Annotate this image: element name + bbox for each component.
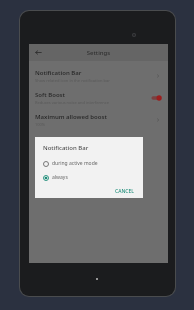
- button[interactable]: Soft Boost toggle: [150, 94, 162, 102]
- button[interactable]: Maximum allowed boost: [29, 109, 168, 131]
- button[interactable]: Notification Bar: [29, 65, 168, 87]
- staticText: CANCEL: [115, 188, 134, 195]
- button[interactable]: CANCEL: [112, 185, 137, 198]
- staticText: Maximum allowed boost: [35, 113, 107, 121]
- other: Open: [154, 116, 162, 124]
- button[interactable]: Back: [33, 47, 44, 58]
- staticText: always: [52, 174, 68, 181]
- staticText: Notification Bar: [43, 144, 89, 152]
- staticText: Restore Purchase: [35, 135, 86, 143]
- button[interactable]: Restore Purchase: [29, 131, 168, 147]
- staticText: during active mode: [52, 160, 98, 167]
- other: Open: [154, 72, 162, 80]
- staticText: Soft Boost: [35, 91, 65, 99]
- staticText: 100%: [35, 122, 46, 127]
- staticText: Settings: [29, 49, 168, 57]
- button[interactable]: Soft Boost: [29, 87, 168, 109]
- staticText: Notification Bar: [35, 69, 82, 77]
- button[interactable]: always: [43, 173, 137, 182]
- button[interactable]: during active mode: [43, 159, 137, 168]
- staticText: Show related icon in the notification ba…: [35, 78, 110, 83]
- staticText: Reduces various noise and interference: [35, 100, 109, 105]
